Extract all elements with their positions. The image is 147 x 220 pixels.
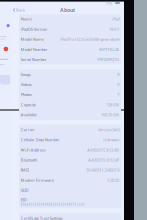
staticText: 89049032004008882600033089761234 (21, 203, 85, 206)
staticText: Bluetooth (21, 157, 37, 163)
staticText: A4:83:E7:C8:12:4D (87, 147, 119, 152)
staticText: 7 (117, 92, 119, 97)
staticText: Unknown (103, 137, 119, 142)
staticText: Carrier (21, 127, 35, 132)
button[interactable]: IMEI (19, 165, 121, 175)
staticText: iPadOS Version (21, 26, 47, 32)
staticText: 0 (117, 82, 119, 87)
staticText: iPad Pro (12.9-inch) (6th generation) (60, 37, 119, 42)
staticText: Model Name (21, 37, 44, 42)
button[interactable]: Videos (19, 79, 121, 89)
staticText: SEID (21, 188, 29, 193)
button[interactable]: Modem Firmware (19, 175, 121, 185)
button[interactable]: Name (19, 14, 121, 24)
button[interactable]: Serial Number (19, 54, 121, 64)
button[interactable]: Carrier (19, 125, 121, 135)
button[interactable]: Back (0, 6, 25, 14)
button[interactable]: Bluetooth (19, 155, 121, 165)
staticText: Songs (21, 72, 31, 77)
staticText: 100.76 GB (101, 112, 119, 117)
staticText: IMEI (21, 167, 29, 173)
staticText: Modem Firmware (21, 177, 54, 183)
staticText: Available (21, 112, 37, 117)
button[interactable]: Certificate Trust Settings (19, 213, 121, 220)
staticText: Model Number (21, 47, 48, 52)
button[interactable]: Model Name (19, 34, 121, 44)
button[interactable]: iPadOS Version (19, 24, 121, 34)
staticText: 128 GB (106, 102, 119, 107)
button[interactable]: Wi-Fi Address (19, 145, 121, 155)
button[interactable]: Songs (19, 69, 121, 79)
staticText: 0 (117, 72, 119, 77)
staticText: F9FX20YQ1G (97, 57, 119, 62)
staticText: iPad (112, 16, 119, 22)
staticText: Photos (21, 92, 32, 97)
button[interactable]: EID (19, 195, 121, 208)
staticText: Verizon 54.0 (98, 127, 119, 132)
staticText: About (60, 6, 75, 14)
staticText: 18.0.1 (109, 26, 119, 32)
staticText: Videos (21, 82, 32, 87)
staticText: Name (21, 16, 32, 22)
staticText: EID (21, 197, 27, 202)
staticText: 9:41 (105, 0, 112, 6)
staticText: Certificate Trust Settings (21, 215, 63, 220)
staticText: A4:83:E7:C8:12:4F (88, 157, 119, 163)
staticText: 5.30.02 (107, 177, 119, 183)
staticText: Cellular Data Number (21, 137, 60, 142)
staticText: Capacity (21, 102, 36, 107)
button[interactable]: Photos (19, 89, 121, 100)
staticText: Back (16, 7, 25, 13)
button[interactable]: Capacity (19, 100, 121, 110)
button[interactable]: Model Number (19, 44, 121, 54)
button[interactable]: SEID (19, 185, 121, 195)
staticText: 35 660311 234567 8 (86, 167, 119, 173)
staticText: Serial Number (21, 57, 47, 62)
staticText: Wi-Fi Address (21, 147, 46, 152)
button[interactable]: Cellular Data Number (19, 135, 121, 145)
staticText: MP1Y3LL/A (99, 47, 119, 52)
button[interactable]: Available (19, 110, 121, 120)
